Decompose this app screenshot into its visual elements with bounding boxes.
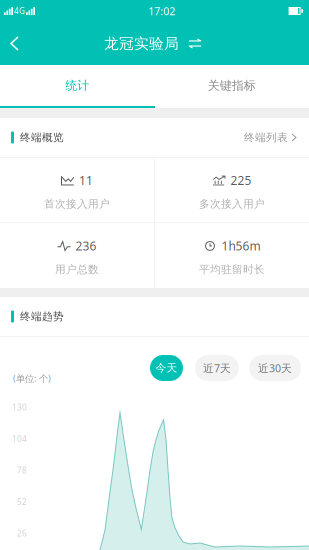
- staticText: 用户总数: [55, 263, 99, 276]
- staticText: 26: [17, 528, 27, 539]
- staticText: 终端列表: [244, 131, 288, 144]
- staticText: 225: [230, 172, 251, 188]
- staticText: 130: [12, 402, 27, 413]
- button[interactable]: 统计: [0, 65, 154, 106]
- staticText: 龙冠实验局: [104, 34, 179, 52]
- button[interactable]: 终端列表: [244, 123, 296, 152]
- staticText: 78: [17, 465, 27, 476]
- staticText: 多次接入用户: [199, 197, 265, 210]
- button[interactable]: 近30天: [249, 355, 301, 381]
- staticText: 104: [12, 434, 27, 444]
- button[interactable]: Back: [0, 24, 31, 63]
- staticText: 近30天: [258, 361, 292, 375]
- staticText: 今天: [155, 361, 177, 374]
- staticText: 统计: [65, 78, 89, 93]
- staticText: 关键指标: [208, 78, 256, 93]
- staticText: 近7天: [203, 361, 231, 375]
- staticText: 首次接入用户: [44, 197, 110, 210]
- staticText: (单位: 个): [13, 372, 51, 384]
- button[interactable]: 近7天: [195, 355, 239, 381]
- staticText: 终端趋势: [20, 310, 64, 323]
- staticText: 17:02: [148, 4, 175, 18]
- staticText: 终端概览: [20, 131, 64, 144]
- staticText: 平均驻留时长: [199, 263, 265, 276]
- staticText: 4G: [14, 6, 25, 16]
- button[interactable]: Switch project: [185, 35, 205, 52]
- staticText: 11: [79, 172, 93, 188]
- staticText: 1h56m: [221, 238, 260, 254]
- staticText: 52: [17, 497, 27, 507]
- button[interactable]: 今天: [150, 355, 183, 381]
- button[interactable]: 关键指标: [154, 65, 309, 106]
- staticText: 236: [75, 238, 96, 254]
